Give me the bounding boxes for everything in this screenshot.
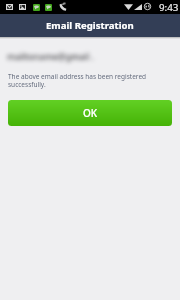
staticText: mailtoname@gmail .com <box>7 51 97 63</box>
staticText: 9:43 <box>159 1 179 14</box>
staticText: Email Registration <box>46 19 134 32</box>
button[interactable]: OK <box>8 100 172 126</box>
staticText: OK <box>83 106 98 120</box>
staticText: The above email address has been registe… <box>8 72 148 89</box>
